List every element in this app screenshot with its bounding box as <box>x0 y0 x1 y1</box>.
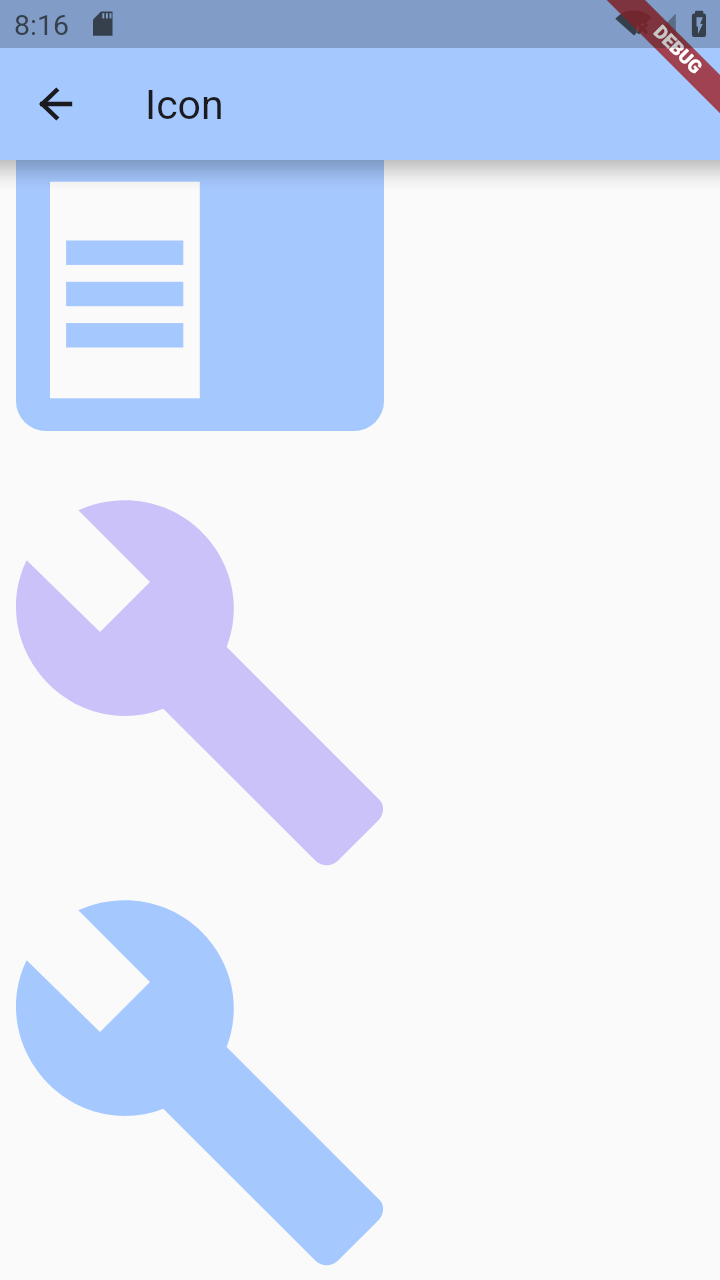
staticText: DEBUG <box>649 21 707 79</box>
staticText: Icon <box>145 81 224 129</box>
button[interactable] <box>0 482 400 882</box>
button[interactable]: Back <box>32 80 80 128</box>
staticText: 8:16 <box>14 9 69 42</box>
button[interactable] <box>16 60 384 431</box>
button[interactable] <box>0 882 400 1280</box>
